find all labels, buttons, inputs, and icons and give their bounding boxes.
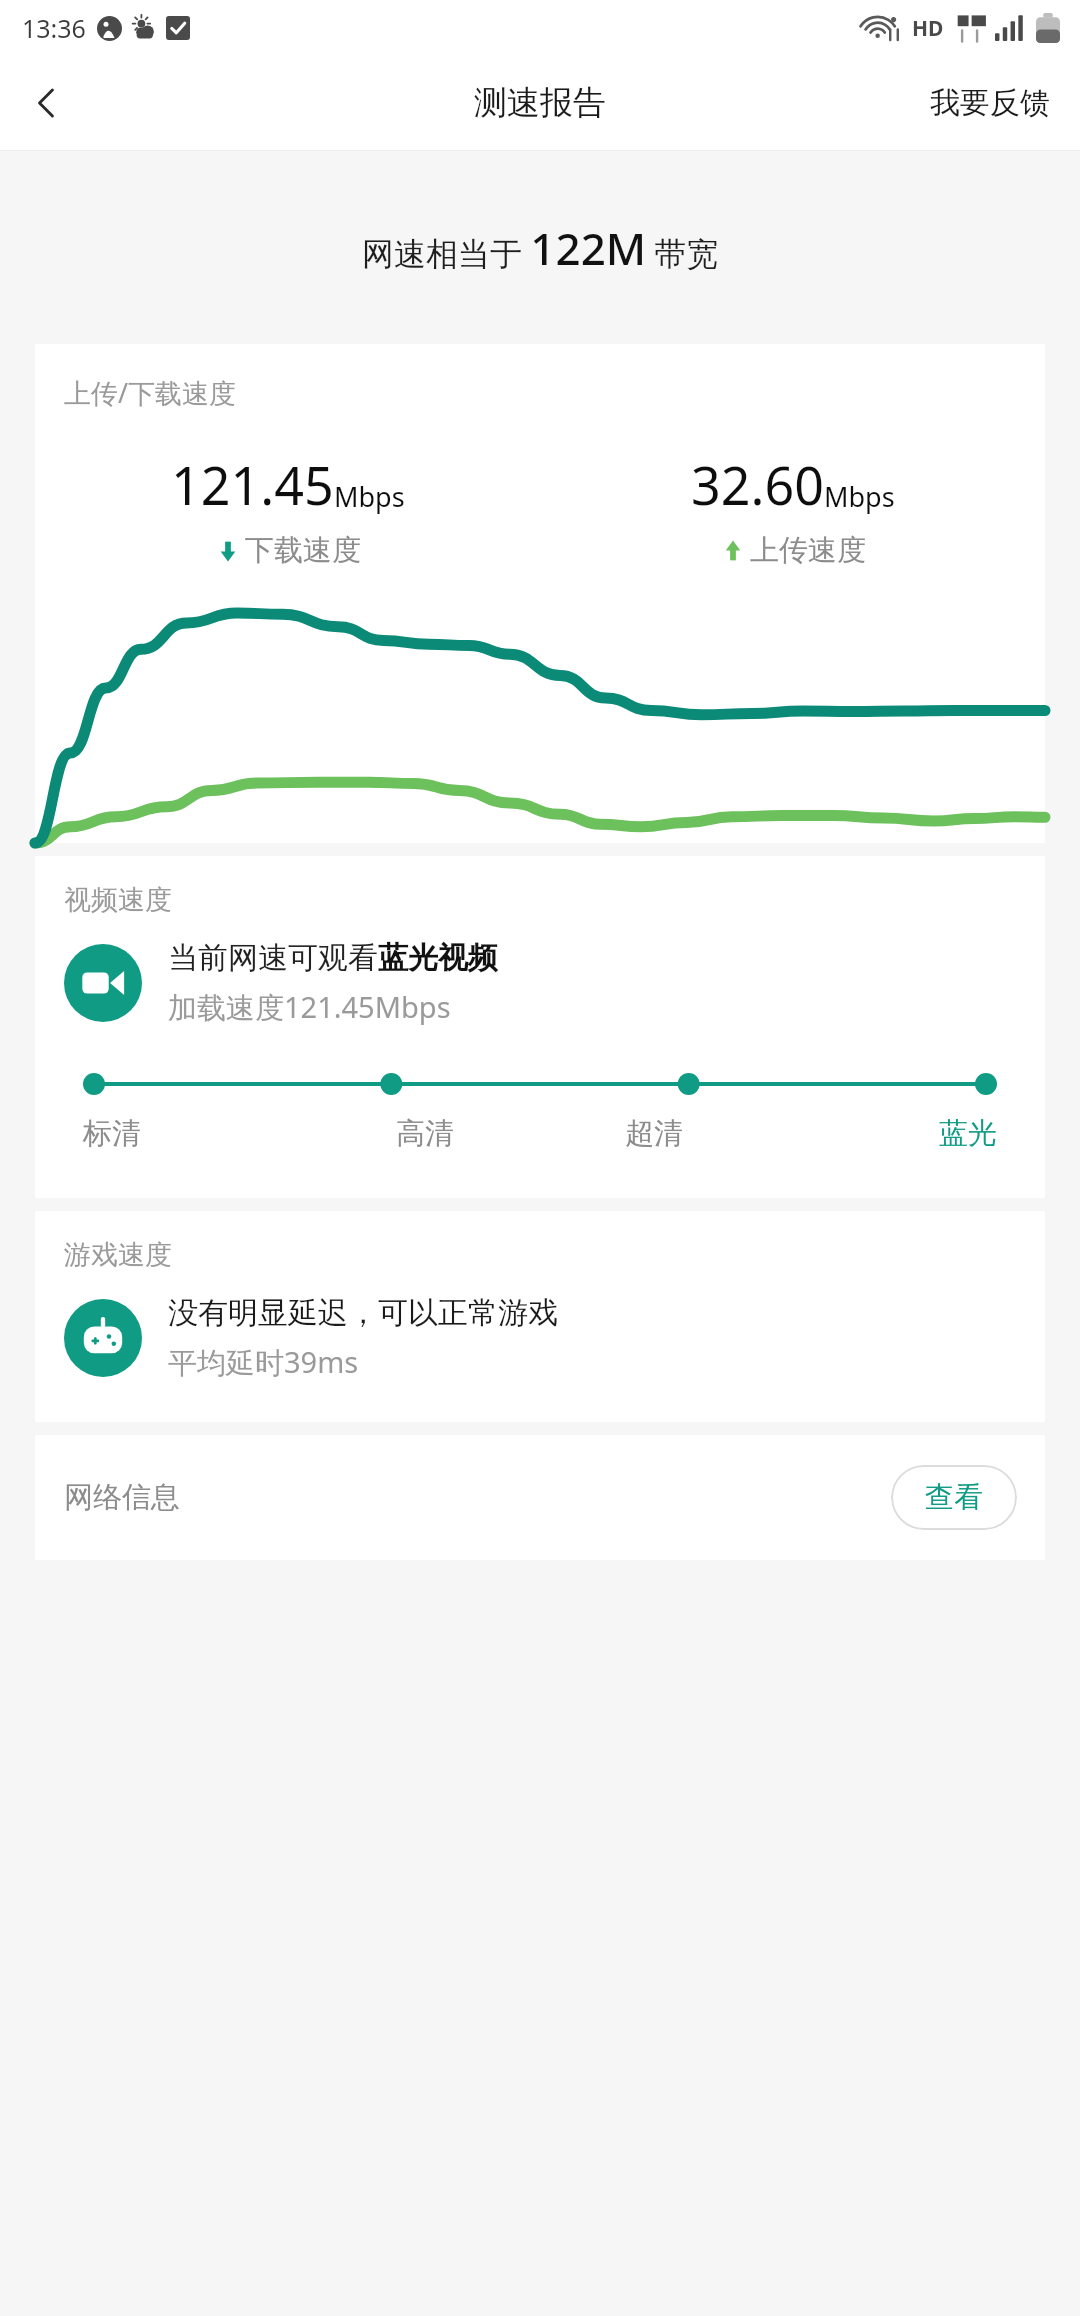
staticText: 超清 [625, 1115, 683, 1152]
staticText: 上传/下载速度 [64, 374, 237, 411]
button[interactable]: 我要反馈 [900, 56, 1080, 150]
staticText: 没有明显延迟，可以正常游戏 [168, 1294, 558, 1332]
staticText: 32.60 [691, 449, 824, 520]
staticText: 加载速度121.45Mbps [168, 987, 451, 1027]
staticText: 13:36 [22, 11, 86, 45]
staticText: 蓝光 [939, 1115, 997, 1152]
button[interactable]: Back [0, 56, 94, 150]
staticText: HD [912, 14, 944, 43]
staticText: 网络信息 [64, 1479, 180, 1516]
staticText: 我要反馈 [930, 84, 1050, 122]
staticText: 下载速度 [245, 532, 361, 569]
staticText: 测速报告 [474, 82, 606, 124]
staticText: 平均延时39ms [168, 1342, 359, 1382]
staticText: Mbps [824, 478, 895, 515]
staticText: 视频速度 [64, 883, 172, 917]
staticText: 网速相当于 122M 带宽 [362, 218, 719, 278]
staticText: 游戏速度 [64, 1238, 172, 1272]
staticText: 查看 [925, 1479, 983, 1516]
staticText: 高清 [396, 1115, 454, 1152]
staticText: 当前网速可观看蓝光视频 [168, 939, 498, 977]
staticText: 上传速度 [750, 532, 866, 569]
staticText: Mbps [334, 478, 405, 515]
button[interactable]: 查看 [891, 1465, 1017, 1530]
staticText: 标清 [83, 1115, 141, 1152]
staticText: 121.45 [171, 449, 334, 520]
